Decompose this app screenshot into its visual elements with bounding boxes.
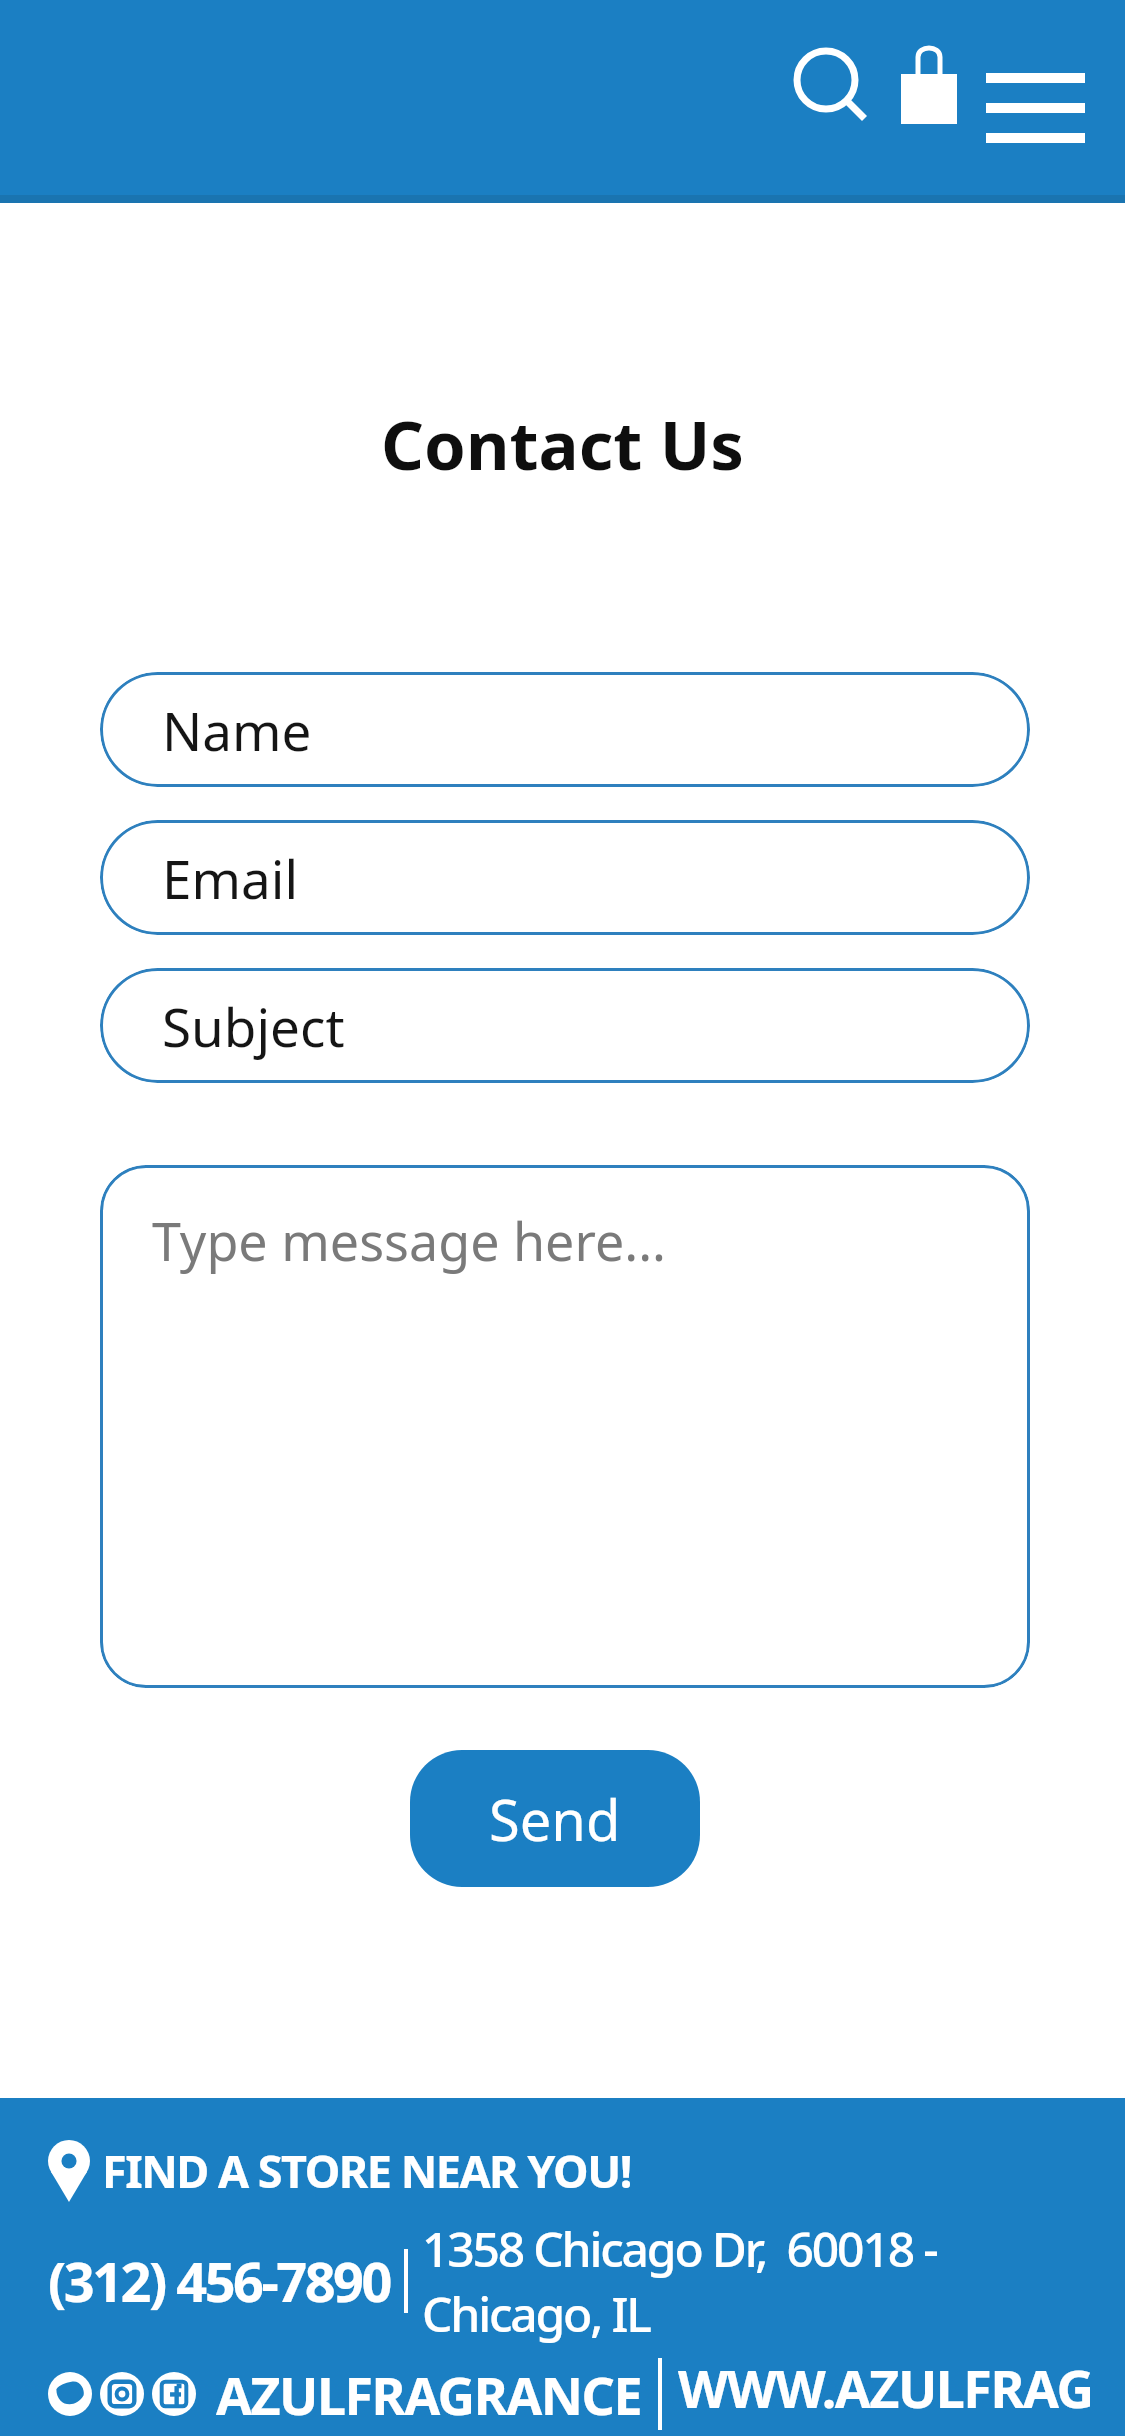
button[interactable]: Shopping bag [893, 36, 965, 128]
button[interactable]: WWW.AZULFRAGRANCE.COM [678, 2352, 1125, 2436]
button[interactable]: Menu [976, 36, 1096, 156]
button[interactable]: Instagram [100, 2372, 144, 2416]
button[interactable]: Name [100, 672, 1030, 787]
staticText: Subject [162, 990, 345, 1062]
staticText: Name [162, 694, 312, 766]
staticText: Contact Us [0, 398, 1125, 489]
staticText: Send [489, 1781, 621, 1857]
button[interactable]: Send [410, 1750, 700, 1887]
button[interactable]: AZULFRAGRANCE [216, 2359, 642, 2430]
button[interactable]: Subject [100, 968, 1030, 1083]
button[interactable]: Type message here... [100, 1165, 1030, 1688]
button[interactable]: FIND A STORE NEAR YOU! [48, 2138, 631, 2202]
staticText: 1358 Chicago Dr, 60018 - Chicago, IL [422, 2216, 1125, 2346]
staticText: Type message here... [152, 1205, 667, 1276]
staticText: Email [162, 842, 299, 914]
staticText: FIND A STORE NEAR YOU! [102, 2140, 631, 2201]
button[interactable]: Facebook [152, 2372, 196, 2416]
button[interactable]: Email [100, 820, 1030, 935]
button[interactable]: Search [786, 36, 878, 128]
staticText: (312) 456-7890 [48, 2244, 390, 2318]
button[interactable]: Twitter [48, 2372, 92, 2416]
